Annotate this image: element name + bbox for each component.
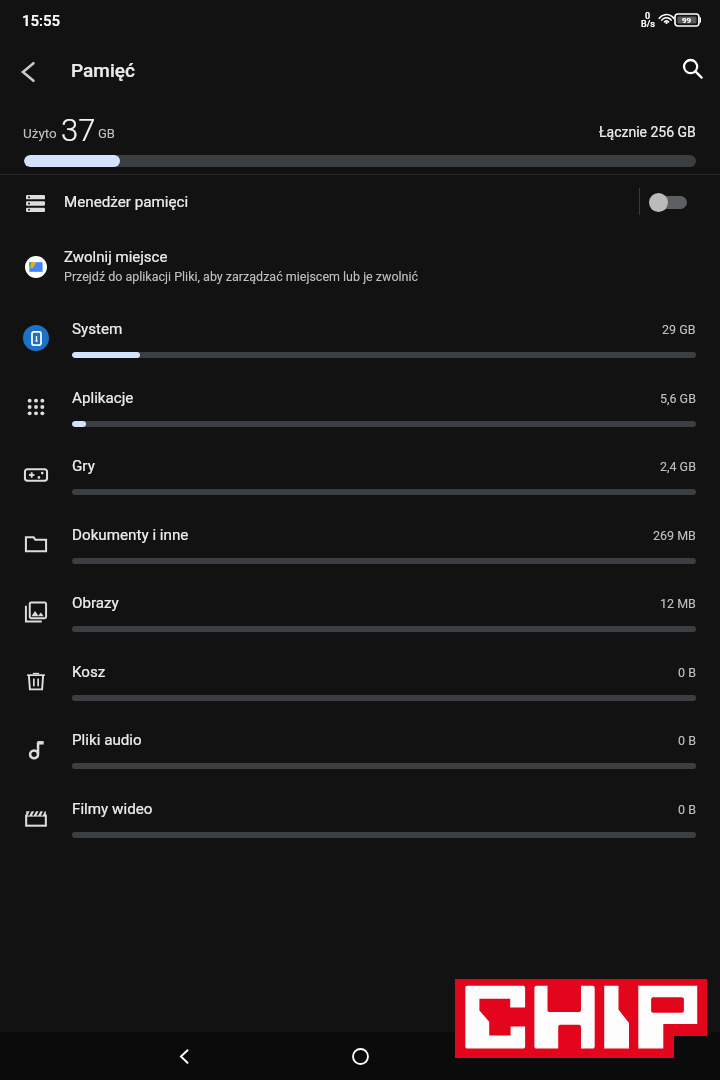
button[interactable]: Home [336,1032,384,1080]
button[interactable]: Back [6,50,50,94]
staticText: Przejdź do aplikacji Pliki, aby zarządza… [64,269,419,284]
staticText: 2,4 GB [660,459,696,474]
button[interactable]: Back [160,1032,208,1080]
button[interactable]: Pliki audio [0,718,720,786]
staticText: Kosz [72,663,106,681]
button[interactable]: Zwolnij miejsce [0,238,720,298]
staticText: 5,6 GB [660,391,696,406]
staticText: 269 MB [653,528,696,543]
staticText: System [72,320,123,338]
staticText: 12 MB [660,596,696,611]
staticText: 37 [61,112,96,148]
staticText: Filmy wideo [72,800,153,818]
staticText: Pliki audio [72,731,142,749]
staticText: 0 B [678,665,696,680]
staticText: Użyto [23,125,57,141]
button[interactable]: Gry [0,444,720,512]
staticText: 0 B [678,733,696,748]
staticText: 0 [645,11,651,22]
staticText: 99 [682,16,692,25]
staticText: B/s [641,19,655,30]
button[interactable]: Kosz [0,650,720,718]
staticText: Aplikacje [72,389,134,407]
button[interactable]: Storage manager toggle [648,183,696,221]
staticText: Pamięć [71,59,135,81]
button[interactable]: Menedżer pamięci [0,176,720,226]
staticText: 0 B [678,802,696,817]
button[interactable]: Obrazy [0,581,720,649]
staticText: 29 GB [662,322,696,337]
staticText: Łącznie 256 GB [599,124,696,140]
staticText: Dokumenty i inne [72,526,189,544]
button[interactable]: Aplikacje [0,376,720,444]
staticText: 15:55 [22,12,61,30]
staticText: Obrazy [72,594,119,612]
button[interactable]: Dokumenty i inne [0,513,720,581]
staticText: GB [98,126,115,141]
staticText: Menedżer pamięci [64,193,189,211]
button[interactable]: Filmy wideo [0,787,720,855]
button[interactable]: System [0,307,720,375]
staticText: Zwolnij miejsce [64,248,168,266]
staticText: Gry [72,457,95,475]
button[interactable]: Search [671,47,715,91]
